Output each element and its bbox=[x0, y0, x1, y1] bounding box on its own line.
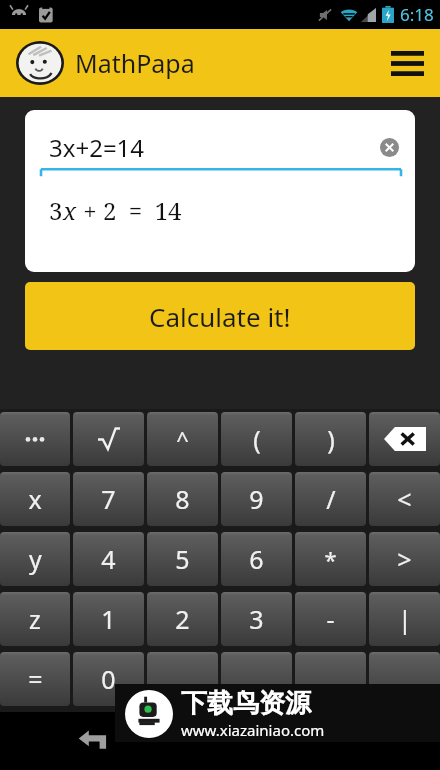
button[interactable]: < bbox=[369, 472, 440, 526]
button[interactable]: ) bbox=[295, 412, 366, 466]
button[interactable]: 9 bbox=[221, 472, 292, 526]
button[interactable]: x bbox=[0, 472, 70, 526]
button[interactable]: = bbox=[0, 652, 70, 706]
staticText: 下载鸟资源 bbox=[181, 687, 311, 720]
staticText: www.xiazainiao.com bbox=[181, 720, 325, 740]
button[interactable] bbox=[73, 412, 144, 466]
staticText: / bbox=[326, 482, 336, 516]
button[interactable]: y bbox=[0, 532, 70, 586]
button[interactable]: 6 bbox=[221, 532, 292, 586]
button[interactable] bbox=[147, 652, 218, 706]
staticText: z bbox=[29, 602, 41, 636]
button[interactable]: 8 bbox=[147, 472, 218, 526]
staticText: . bbox=[327, 662, 334, 696]
button[interactable]: ( bbox=[221, 412, 292, 466]
button[interactable]: 0 bbox=[73, 652, 144, 706]
button[interactable] bbox=[369, 652, 440, 706]
button[interactable]: * bbox=[295, 532, 366, 586]
staticText: 2 bbox=[175, 602, 190, 636]
staticText: < bbox=[397, 482, 412, 516]
button[interactable]: Backspace bbox=[369, 412, 440, 466]
button[interactable]: 3x+2=14 bbox=[25, 110, 415, 272]
button[interactable]: > bbox=[369, 532, 440, 586]
button[interactable]: 1 bbox=[73, 592, 144, 646]
staticText: 7 bbox=[101, 482, 116, 516]
button[interactable]: Back bbox=[70, 719, 122, 763]
staticText: * bbox=[324, 544, 337, 574]
button[interactable]: Menu bbox=[382, 38, 432, 88]
staticText: 6 bbox=[249, 542, 264, 576]
button[interactable]: ^ bbox=[147, 412, 218, 466]
staticText: 5 bbox=[175, 542, 190, 576]
staticText: y bbox=[29, 542, 42, 576]
button[interactable] bbox=[221, 652, 292, 706]
staticText: 9 bbox=[249, 482, 264, 516]
staticText: > bbox=[397, 542, 412, 576]
staticText: | bbox=[398, 602, 412, 636]
staticText: 4 bbox=[101, 542, 116, 576]
button[interactable]: - bbox=[295, 592, 366, 646]
button[interactable]: MathPapa bbox=[16, 41, 195, 85]
button[interactable]: Calculate it! bbox=[25, 282, 415, 350]
staticText: x bbox=[28, 482, 42, 516]
staticText: = bbox=[28, 662, 43, 696]
staticText: 0 bbox=[101, 662, 116, 696]
button[interactable]: 3 bbox=[221, 592, 292, 646]
staticText: 3 bbox=[249, 602, 264, 636]
button[interactable] bbox=[0, 412, 70, 466]
button[interactable]: Clear bbox=[375, 133, 403, 161]
button[interactable]: 7 bbox=[73, 472, 144, 526]
staticText: MathPapa bbox=[75, 46, 195, 80]
staticText: 8 bbox=[175, 482, 190, 516]
staticText: x bbox=[63, 194, 77, 227]
staticText: 3x+2=14 bbox=[49, 131, 145, 164]
button[interactable]: . bbox=[295, 652, 366, 706]
staticText: 6:18 bbox=[400, 3, 434, 26]
button[interactable]: / bbox=[295, 472, 366, 526]
button[interactable]: | bbox=[369, 592, 440, 646]
staticText: + 2 = 14 bbox=[77, 194, 182, 227]
button[interactable]: 2 bbox=[147, 592, 218, 646]
button[interactable]: z bbox=[0, 592, 70, 646]
staticText: ( bbox=[253, 422, 261, 456]
staticText: - bbox=[326, 602, 335, 636]
staticText: Calculate it! bbox=[149, 299, 291, 334]
staticText: ) bbox=[327, 422, 335, 456]
staticText: 1 bbox=[101, 602, 116, 636]
staticText: ^ bbox=[176, 424, 189, 454]
button[interactable]: 5 bbox=[147, 532, 218, 586]
button[interactable]: 4 bbox=[73, 532, 144, 586]
staticText: 3 bbox=[49, 194, 63, 227]
